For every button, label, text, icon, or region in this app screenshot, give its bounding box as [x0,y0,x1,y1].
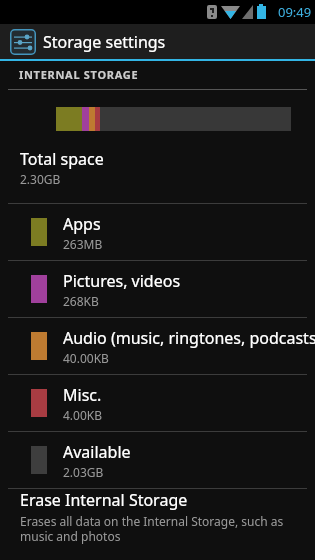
staticText: 2.30GB [20,171,61,187]
staticText: 268KB [63,293,99,309]
button[interactable]: Storage settings [0,24,315,59]
button[interactable]: Apps [0,204,315,260]
staticText: Erase Internal Storage [20,489,188,511]
staticText: Available [63,441,131,463]
staticText: Misc. [63,384,102,406]
button[interactable]: Pictures, videos [0,261,315,317]
staticText: 263MB [63,236,103,252]
staticText: 2.03GB [63,464,104,480]
button[interactable]: Erase Internal Storage [0,489,315,560]
staticText: Apps [63,213,101,235]
staticText: Erases all data on the Internal Storage,… [20,513,284,544]
staticText: INTERNAL STORAGE [19,67,139,82]
staticText: Pictures, videos [63,270,181,292]
staticText: Total space [20,148,104,170]
button[interactable]: Total space [0,152,315,203]
staticText: 4.00KB [63,407,103,423]
staticText: Storage settings [43,31,166,53]
staticText: Audio (music, ringtones, podcasts) [63,327,315,349]
button[interactable]: Audio (music, ringtones, podcasts) [0,318,315,374]
button[interactable]: Available [0,432,315,488]
staticText: 09:49 [278,3,312,21]
button[interactable]: Misc. [0,375,315,431]
staticText: 40.00KB [63,350,109,366]
